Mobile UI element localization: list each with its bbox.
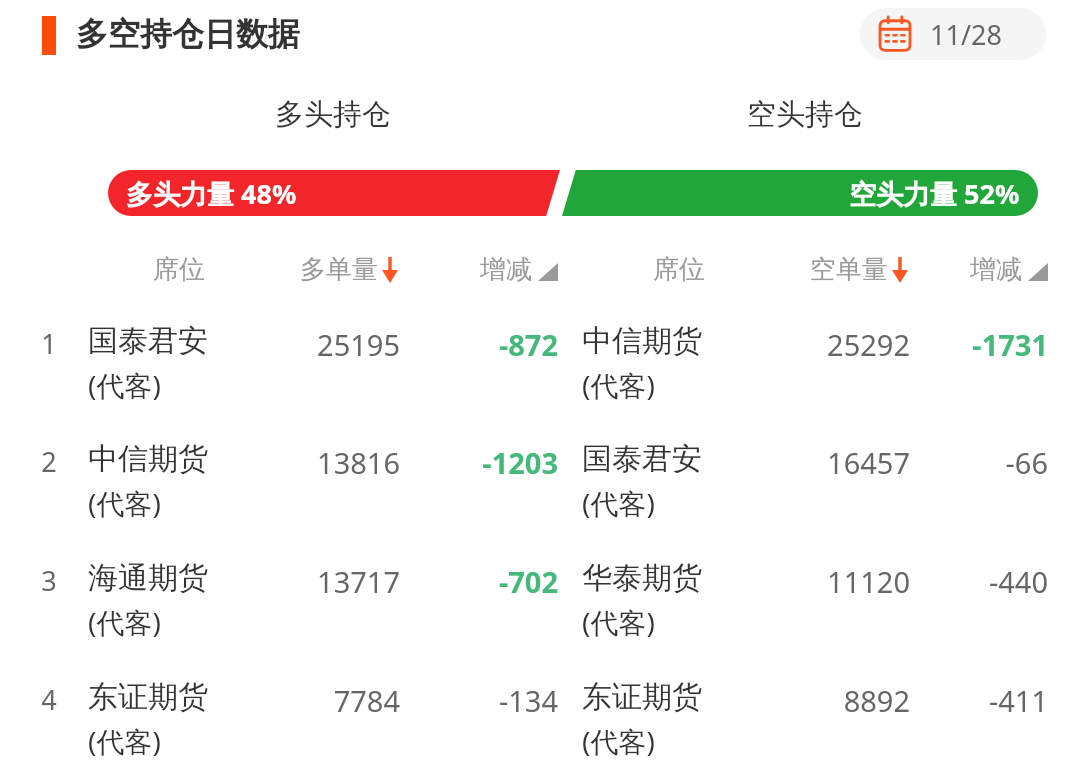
- staticText: -1731: [858, 325, 1048, 364]
- staticText: 7784: [180, 681, 400, 720]
- staticText: -872: [368, 325, 558, 364]
- button[interactable]: 国泰君安: [88, 322, 318, 404]
- button[interactable]: 多头力量 48%: [108, 170, 560, 216]
- staticText: 东证期货: [582, 678, 702, 716]
- staticText: -66: [858, 443, 1048, 482]
- staticText: 3: [18, 562, 80, 599]
- staticText: 多头力量 48%: [126, 175, 297, 212]
- button[interactable]: 增减: [298, 253, 558, 286]
- staticText: 空头持仓: [652, 96, 958, 133]
- staticText: 空单量: [810, 253, 888, 286]
- staticText: 25292: [690, 325, 910, 364]
- staticText: 国泰君安: [582, 440, 702, 478]
- staticText: 增减: [480, 253, 532, 286]
- button[interactable]: 空头力量 52%: [562, 170, 1038, 216]
- staticText: 25195: [180, 325, 400, 364]
- staticText: 2: [18, 443, 80, 480]
- staticText: 东证期货: [88, 678, 208, 716]
- button[interactable]: 空单量: [650, 253, 910, 286]
- staticText: (代客): [582, 366, 655, 404]
- staticText: 增减: [970, 253, 1022, 286]
- button[interactable]: 华泰期货: [582, 559, 812, 641]
- staticText: 4: [18, 681, 80, 718]
- button[interactable]: 东证期货: [88, 678, 318, 760]
- staticText: 空头力量 52%: [849, 175, 1020, 212]
- staticText: 1: [18, 325, 80, 362]
- button[interactable]: 席位: [445, 253, 705, 286]
- button[interactable]: 席位: [0, 253, 205, 286]
- staticText: (代客): [88, 484, 161, 522]
- staticText: (代客): [88, 722, 161, 760]
- staticText: (代客): [88, 603, 161, 641]
- staticText: 16457: [690, 443, 910, 482]
- staticText: (代客): [582, 603, 655, 641]
- staticText: 多单量: [300, 253, 378, 286]
- button[interactable]: 增减: [788, 253, 1048, 286]
- staticText: 席位: [153, 253, 205, 286]
- staticText: (代客): [582, 722, 655, 760]
- staticText: 11120: [690, 562, 910, 601]
- staticText: -134: [368, 681, 558, 720]
- button[interactable]: 多单量: [140, 253, 400, 286]
- staticText: 华泰期货: [582, 559, 702, 597]
- staticText: 多头持仓: [180, 96, 486, 133]
- staticText: -411: [858, 681, 1048, 720]
- staticText: 13717: [180, 562, 400, 601]
- button[interactable]: 11/28: [860, 8, 1046, 60]
- staticText: (代客): [582, 484, 655, 522]
- button[interactable]: 中信期货: [582, 322, 812, 404]
- staticText: -1203: [368, 443, 558, 482]
- staticText: 中信期货: [582, 322, 702, 360]
- button[interactable]: 国泰君安: [582, 440, 812, 522]
- staticText: 13816: [180, 443, 400, 482]
- staticText: 中信期货: [88, 440, 208, 478]
- staticText: 国泰君安: [88, 322, 208, 360]
- button[interactable]: 东证期货: [582, 678, 812, 760]
- staticText: 8892: [690, 681, 910, 720]
- staticText: 多空持仓日数据: [76, 14, 300, 54]
- button[interactable]: 海通期货: [88, 559, 318, 641]
- staticText: -440: [858, 562, 1048, 601]
- button[interactable]: 中信期货: [88, 440, 318, 522]
- staticText: -702: [368, 562, 558, 601]
- staticText: 海通期货: [88, 559, 208, 597]
- staticText: 11/28: [930, 16, 1002, 53]
- staticText: (代客): [88, 366, 161, 404]
- staticText: 席位: [653, 253, 705, 286]
